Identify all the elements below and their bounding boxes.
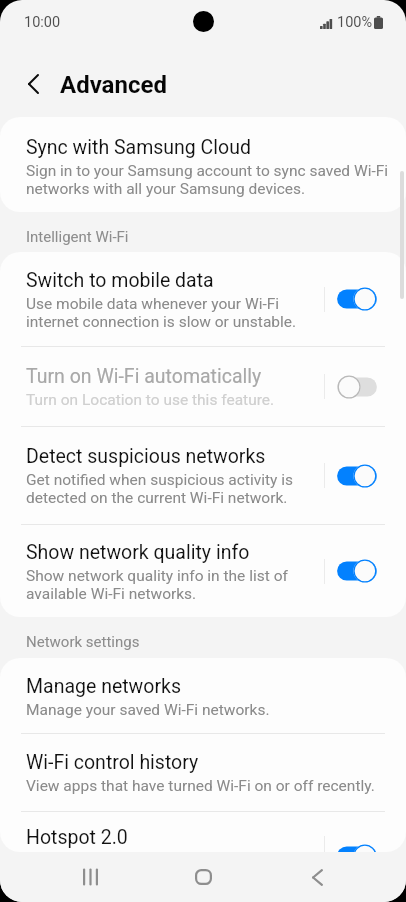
button[interactable]: Toggle on — [337, 554, 377, 588]
staticText: 100% — [337, 14, 373, 31]
button[interactable]: Back — [288, 852, 346, 902]
button[interactable]: Recent apps — [61, 852, 119, 902]
staticText: Detect suspicious networks — [26, 445, 266, 468]
staticText: Turn on Location to use this feature. — [26, 391, 275, 409]
staticText: View apps that have turned Wi-Fi on or o… — [26, 777, 375, 795]
staticText: Manage your saved Wi-Fi networks. — [26, 701, 270, 719]
staticText: 10:00 — [24, 14, 61, 31]
button[interactable]: Manage networks — [0, 658, 406, 733]
staticText: Network settings — [26, 633, 140, 651]
button[interactable]: Toggle on — [337, 459, 377, 493]
staticText: Sign in to your Samsung account to sync … — [26, 162, 392, 197]
button[interactable]: Back — [16, 67, 50, 101]
staticText: Switch to mobile data — [26, 269, 214, 292]
staticText: Turn on Wi-Fi automatically — [26, 365, 262, 388]
button[interactable]: Home — [174, 852, 232, 902]
button[interactable]: Sync with Samsung Cloud — [0, 117, 406, 212]
staticText: Hotspot 2.0 — [26, 826, 128, 849]
staticText: Sync with Samsung Cloud — [26, 136, 251, 159]
button[interactable]: Toggle on — [337, 282, 377, 316]
staticText: Intelligent Wi-Fi — [26, 228, 129, 246]
button[interactable]: Switch to mobile data — [0, 252, 406, 346]
button[interactable]: Hotspot 2.0 — [0, 812, 406, 852]
staticText: Show network quality info — [26, 541, 250, 564]
button[interactable]: Detect suspicious networks — [0, 427, 406, 524]
button[interactable]: Show network quality info — [0, 525, 406, 617]
button[interactable]: Toggle off — [337, 370, 377, 404]
staticText: Manage networks — [26, 675, 181, 698]
staticText: Show network quality info in the list of… — [26, 567, 316, 602]
staticText: Wi-Fi control history — [26, 751, 199, 774]
staticText: Get notified when suspicious activity is… — [26, 471, 316, 506]
staticText: Advanced — [60, 71, 167, 99]
button[interactable]: Wi-Fi control history — [0, 734, 406, 811]
staticText: Use mobile data whenever your Wi-Fi inte… — [26, 295, 316, 330]
button[interactable]: Turn on Wi-Fi automatically — [0, 347, 406, 426]
